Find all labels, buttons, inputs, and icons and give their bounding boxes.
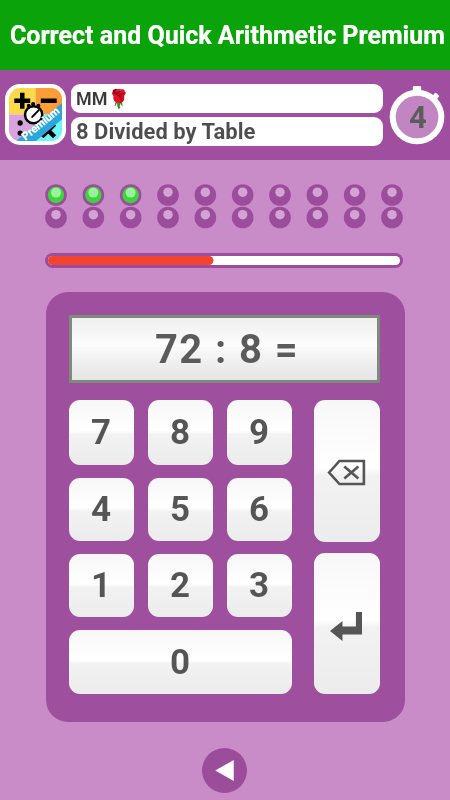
button[interactable]: 2 [148,554,213,617]
staticText: 6 [249,489,270,530]
button[interactable]: 6 [227,478,292,541]
button[interactable]: 1 [69,554,134,617]
button[interactable]: Back [202,748,247,793]
staticText: 72 : 8 = [155,326,300,373]
button[interactable]: 7 [69,400,134,465]
staticText: 7 [91,412,112,453]
button[interactable]: App icon [5,84,66,145]
staticText: 5 [170,489,191,530]
button[interactable]: 8 Divided by Table [71,117,383,146]
staticText: Correct and Quick Arithmetic Premium [10,21,445,50]
staticText: 4 [91,489,112,530]
staticText: 9 [249,412,270,453]
button[interactable]: Enter [314,553,380,694]
button[interactable]: 3 [227,554,292,617]
button[interactable]: 8 [148,400,213,465]
staticText: MM🌹 [76,88,130,109]
staticText: 0 [170,642,191,683]
button[interactable]: 9 [227,400,292,465]
button[interactable]: Backspace [314,400,380,542]
button[interactable]: 0 [69,630,292,694]
button[interactable]: 5 [148,478,213,541]
staticText: 3 [249,565,270,606]
staticText: 4 [409,99,427,135]
staticText: 1 [91,565,112,606]
button[interactable]: 4 [69,478,134,541]
staticText: 8 Divided by Table [76,119,256,145]
staticText: 8 [170,412,191,453]
staticText: 2 [170,565,191,606]
button[interactable]: MM🌹 [71,84,383,113]
staticText: Premium [19,104,62,141]
